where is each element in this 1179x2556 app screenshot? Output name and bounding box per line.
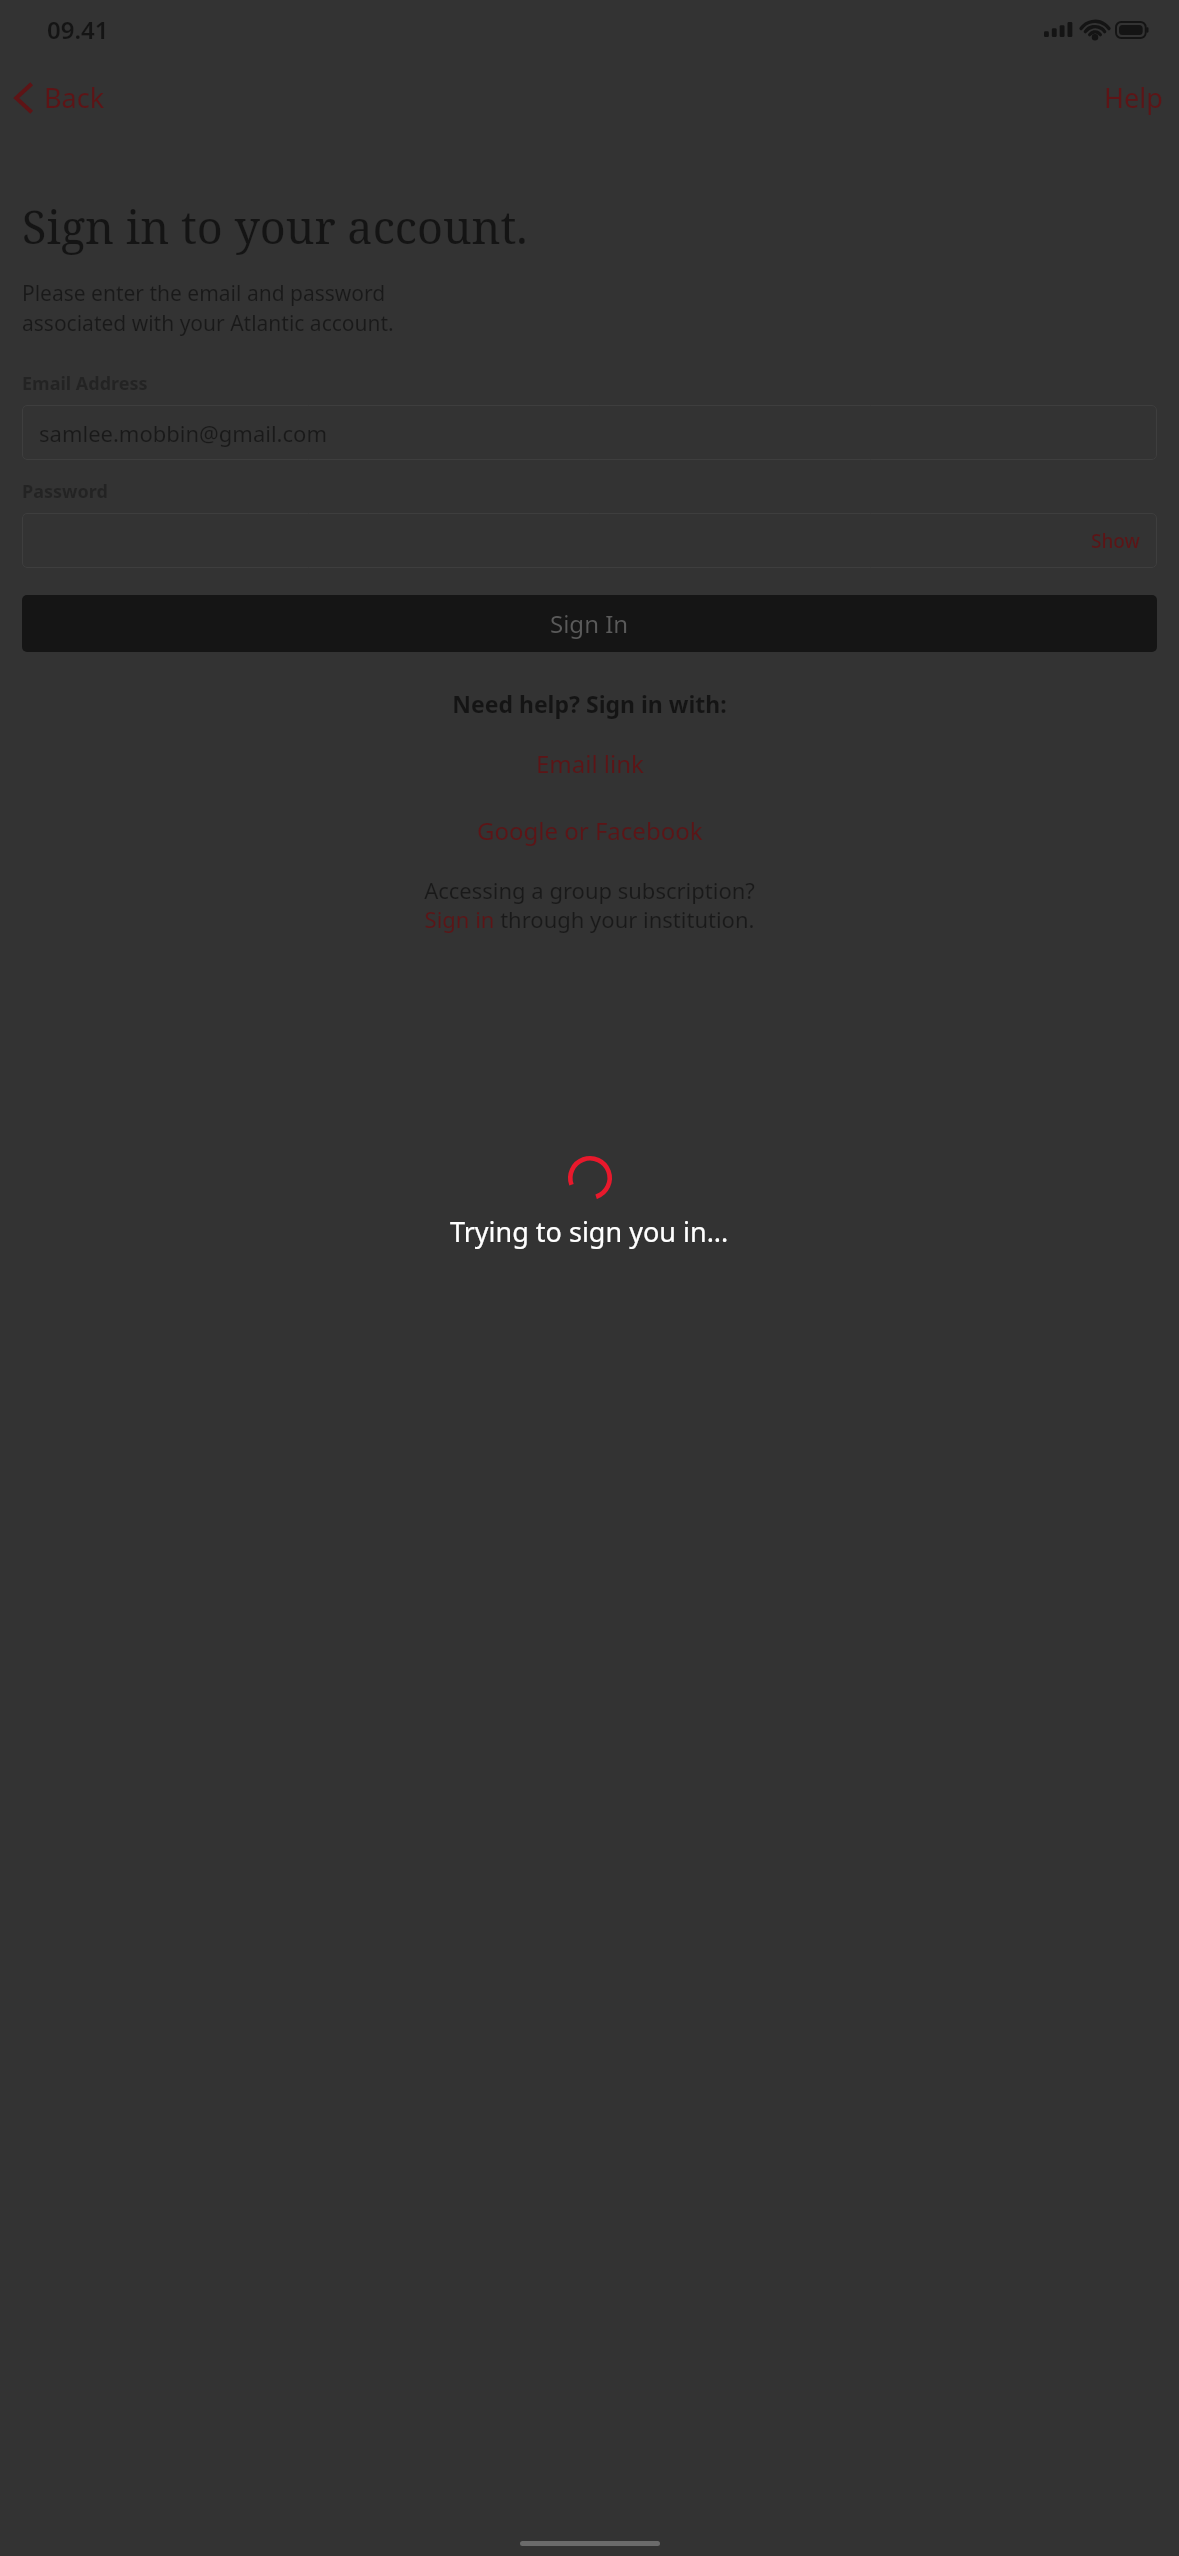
button[interactable]: Help [1088, 71, 1179, 124]
button[interactable]: Show [22, 513, 1157, 568]
button[interactable]: Google or Facebook [459, 810, 721, 851]
staticText: Google or Facebook [477, 814, 703, 847]
button[interactable]: Email link [518, 743, 662, 784]
staticText: 09.41 [47, 13, 109, 46]
button[interactable]: samlee.mobbin@gmail.com [22, 405, 1157, 460]
button[interactable]: Accessing a group subscription? Sign in … [0, 875, 1179, 934]
staticText: Please enter the email and password asso… [22, 279, 394, 337]
staticText: Email link [536, 747, 644, 780]
staticText: Password [22, 479, 108, 504]
button[interactable]: Show [1074, 522, 1157, 560]
staticText: Sign In [550, 607, 629, 640]
staticText: Email Address [22, 371, 148, 396]
button[interactable]: Sign In [22, 595, 1157, 652]
staticText: Need help? Sign in with: [0, 688, 1179, 719]
staticText: Trying to sign you in... [450, 1213, 729, 1250]
button[interactable]: Back [0, 71, 119, 124]
staticText: Accessing a group subscription? Sign in … [424, 875, 755, 934]
staticText: Show [1091, 528, 1140, 554]
staticText: samlee.mobbin@gmail.com [39, 418, 327, 448]
staticText: Help [1104, 79, 1163, 116]
staticText: Back [44, 79, 105, 116]
staticText: Sign in to your account. [22, 196, 528, 257]
